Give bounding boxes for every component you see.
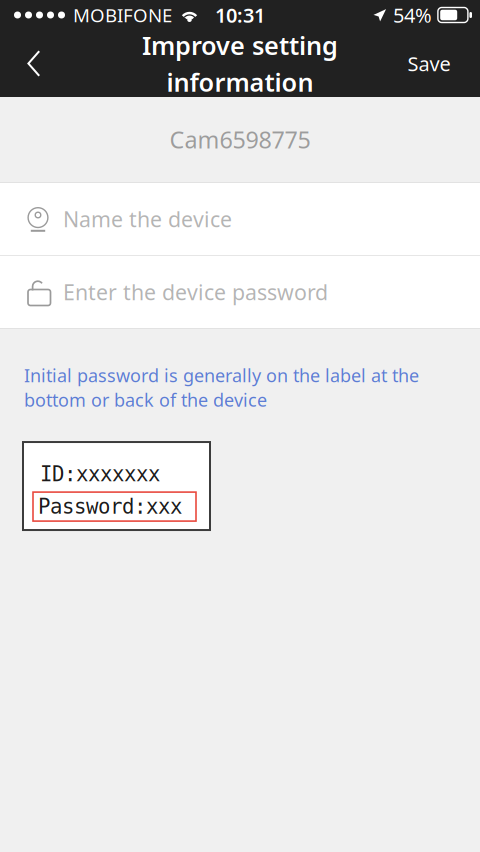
staticText: 54%: [393, 2, 432, 28]
staticText: Password:xxx: [38, 495, 182, 519]
button[interactable]: Name the device: [0, 183, 480, 255]
staticText: Name the device: [63, 205, 232, 233]
staticText: 10:31: [215, 2, 265, 28]
staticText: ID:xxxxxxx: [40, 462, 160, 486]
staticText: Save: [407, 50, 450, 77]
staticText: Enter the device password: [63, 278, 328, 306]
staticText: MOBIFONE: [73, 3, 172, 27]
staticText: Initial password is generally on the lab…: [24, 363, 419, 412]
staticText: Improve setting: [142, 28, 338, 62]
staticText: Cam6598775: [169, 124, 310, 155]
staticText: information: [166, 65, 313, 99]
button[interactable]: Back: [0, 30, 68, 96]
button[interactable]: Save: [393, 30, 465, 96]
button[interactable]: Enter the device password: [0, 256, 480, 328]
